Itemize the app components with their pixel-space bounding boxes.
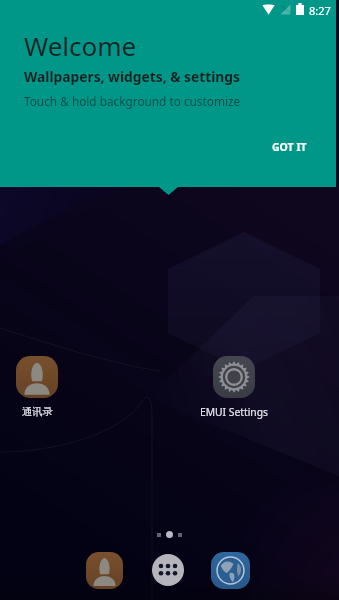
button[interactable]: Browser <box>211 552 250 589</box>
button[interactable]: 通讯录 <box>0 356 74 418</box>
staticText: Touch & hold background to customize <box>24 93 241 109</box>
staticText: EMUI Settings <box>200 405 268 419</box>
button[interactable]: Contacts <box>86 552 123 589</box>
button[interactable]: EMUI Settings <box>197 356 271 419</box>
staticText: Welcome <box>24 28 137 63</box>
staticText: GOT IT <box>272 140 307 154</box>
staticText: Wallpapers, widgets, & settings <box>24 67 240 86</box>
staticText: 8:27 <box>309 3 331 18</box>
button[interactable]: GOT IT <box>243 132 336 162</box>
button[interactable]: All apps <box>152 554 184 586</box>
staticText: 通讯录 <box>22 405 53 418</box>
